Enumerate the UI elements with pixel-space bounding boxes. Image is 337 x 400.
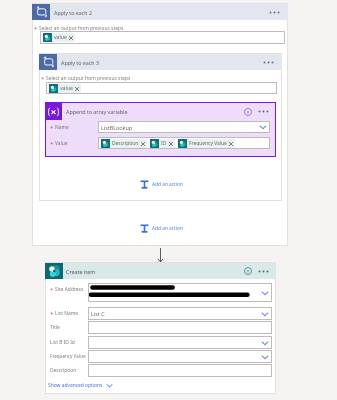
button[interactable]: Add an action: [138, 223, 185, 234]
button[interactable]: Add an action: [138, 179, 185, 190]
button[interactable]: Name: [98, 121, 270, 133]
staticText: Name: [55, 124, 69, 131]
staticText: List Name: [55, 310, 78, 317]
button[interactable]: Title: [88, 321, 272, 334]
staticText: Description: [50, 367, 77, 374]
staticText: *: [50, 286, 54, 294]
staticText: *: [50, 140, 54, 148]
button[interactable]: Append to array variable: [45, 103, 276, 120]
staticText: Select an output from previous steps: [46, 75, 131, 82]
other: More commands: [268, 8, 281, 17]
staticText: ListBLookup: [101, 124, 133, 131]
other: Info: [244, 108, 252, 116]
staticText: Frequency Value: [189, 140, 227, 147]
staticText: value: [60, 85, 73, 92]
staticText: Apply to each 2: [54, 9, 93, 16]
button[interactable]: Apply to each: [39, 54, 282, 70]
staticText: *: [34, 25, 38, 33]
staticText: Select an output from previous steps: [39, 25, 124, 32]
staticText: Value: [55, 140, 68, 147]
other: More commands: [257, 107, 270, 116]
staticText: Show advanced options: [48, 382, 103, 389]
staticText: ID: [161, 140, 167, 147]
staticText: *: [50, 124, 54, 132]
staticText: Apply to each 3: [61, 59, 100, 66]
other: More commands: [257, 267, 270, 276]
other: More commands: [262, 58, 275, 67]
staticText: value: [54, 34, 67, 41]
button[interactable]: Site Address: [88, 283, 272, 302]
other: Info: [244, 267, 252, 275]
staticText: Add an action: [152, 181, 183, 188]
staticText: *: [41, 75, 45, 83]
button[interactable]: Apply to each: [32, 4, 288, 20]
other: Apply to each: [39, 54, 57, 70]
button[interactable]: Select an output from previous steps: [46, 82, 277, 94]
staticText: Frequency Value: [50, 353, 86, 359]
staticText: Create item: [66, 268, 96, 275]
staticText: Append to array variable: [66, 108, 128, 115]
button[interactable]: SharePoint: [45, 263, 276, 279]
button[interactable]: Show advanced options: [47, 381, 114, 390]
staticText: List C: [91, 310, 105, 317]
button[interactable]: List Name: [88, 307, 272, 320]
staticText: Title: [50, 324, 60, 331]
button[interactable]: Frequency Value: [88, 350, 272, 363]
other: SharePoint: [45, 263, 63, 279]
button[interactable]: Select an output from previous steps: [40, 31, 285, 44]
staticText: Add an action: [152, 225, 183, 232]
button[interactable]: Value: [98, 137, 270, 149]
button[interactable]: List B ID Id: [88, 336, 272, 349]
staticText: Site Address: [55, 286, 84, 293]
staticText: List B ID Id: [50, 339, 75, 346]
button[interactable]: Description: [88, 364, 272, 377]
other: Apply to each: [32, 4, 50, 20]
staticText: Description: [112, 140, 139, 147]
staticText: *: [50, 310, 54, 318]
